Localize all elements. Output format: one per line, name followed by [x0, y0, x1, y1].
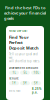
button[interactable]: 10L: [31, 71, 41, 75]
button[interactable]: 3Y: [20, 81, 30, 85]
staticText: FIXED DEPOSIT: [9, 29, 28, 32]
staticText: Deposit Match: [9, 45, 39, 50]
staticText: Tenure: [9, 77, 19, 80]
staticText: achieve your financial goals: [4, 10, 46, 21]
button[interactable]: 1Y: [9, 81, 19, 85]
button[interactable]: 5Y: [31, 81, 41, 85]
staticText: 1L: [12, 71, 15, 74]
staticText: 10L: [33, 71, 38, 74]
staticText: Best rate: [9, 89, 21, 92]
staticText: 5L: [23, 71, 26, 74]
staticText: Investment amount: [9, 66, 38, 70]
staticText: 8.25% p.a.: [32, 87, 41, 94]
staticText: Tell us your goal and we: [9, 52, 38, 60]
staticText: Find the best FDs to: [5, 5, 45, 10]
staticText: Find Your Perfect: [9, 34, 29, 45]
button[interactable]: 5L: [20, 71, 30, 75]
staticText: will shortlist top rates.: [9, 60, 40, 63]
staticText: 5Y: [34, 81, 38, 85]
button[interactable]: 1L: [9, 71, 19, 75]
staticText: 3Y: [23, 81, 27, 85]
staticText: 1Y: [12, 81, 16, 85]
